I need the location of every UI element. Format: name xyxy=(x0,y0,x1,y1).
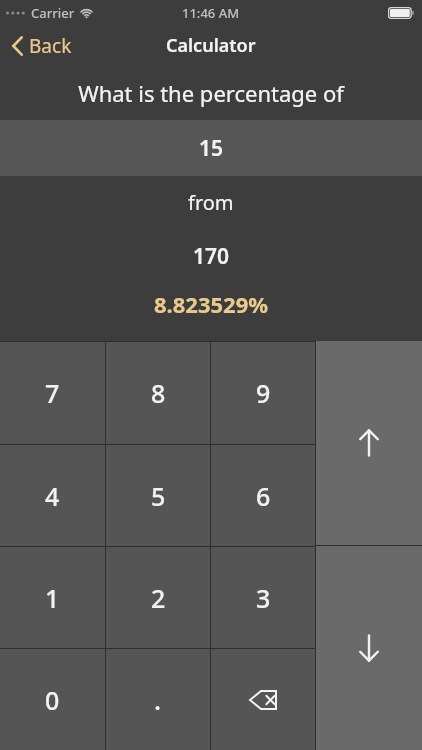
staticText: 5 xyxy=(151,479,166,513)
staticText: 3 xyxy=(256,581,271,615)
staticText: Carrier xyxy=(31,4,75,22)
staticText: 2 xyxy=(151,581,166,615)
staticText: . xyxy=(154,682,162,717)
button[interactable]: Back xyxy=(0,29,84,63)
staticText: 170 xyxy=(193,242,230,271)
button[interactable]: 3 xyxy=(211,547,315,648)
staticText: from xyxy=(188,189,234,216)
button[interactable]: 1 xyxy=(0,547,105,648)
button[interactable]: 4 xyxy=(0,445,105,546)
staticText: 8 xyxy=(151,376,166,410)
button[interactable]: Backspace xyxy=(211,649,315,750)
button[interactable]: 8 xyxy=(106,342,210,444)
staticText: 8.823529% xyxy=(154,289,269,319)
staticText: 6 xyxy=(256,479,271,513)
button[interactable]: . xyxy=(106,649,210,750)
button[interactable]: 7 xyxy=(0,342,105,444)
button[interactable]: 9 xyxy=(211,342,315,444)
staticText: 9 xyxy=(256,376,271,410)
button[interactable]: 0 xyxy=(0,649,105,750)
button[interactable]: 170 xyxy=(0,228,422,284)
staticText: Back xyxy=(29,33,72,59)
staticText: 4 xyxy=(45,479,60,513)
staticText: 15 xyxy=(199,134,224,163)
button[interactable]: Move up xyxy=(316,341,422,545)
button[interactable]: Move down xyxy=(316,546,422,750)
staticText: 0 xyxy=(45,683,60,717)
staticText: 7 xyxy=(45,376,60,410)
staticText: 11:46 AM xyxy=(182,4,240,22)
button[interactable]: 5 xyxy=(106,445,210,546)
button[interactable]: 6 xyxy=(211,445,315,546)
staticText: What is the percentage of xyxy=(78,78,344,108)
button[interactable]: 2 xyxy=(106,547,210,648)
staticText: 1 xyxy=(45,581,60,615)
button[interactable]: 15 xyxy=(0,120,422,176)
staticText: Calculator xyxy=(166,33,256,58)
